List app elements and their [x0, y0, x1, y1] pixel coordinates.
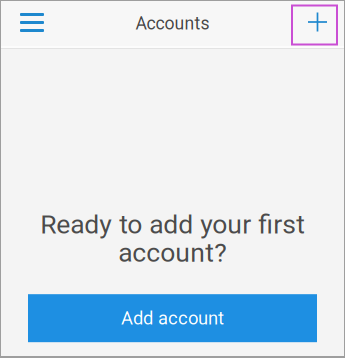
staticText: Ready to add your first account? [40, 209, 305, 268]
button[interactable]: Add [292, 2, 337, 44]
staticText: Accounts [135, 13, 209, 34]
button[interactable]: Add account [28, 294, 317, 342]
button[interactable]: Menu [10, 1, 54, 45]
staticText: Add account [121, 307, 224, 329]
